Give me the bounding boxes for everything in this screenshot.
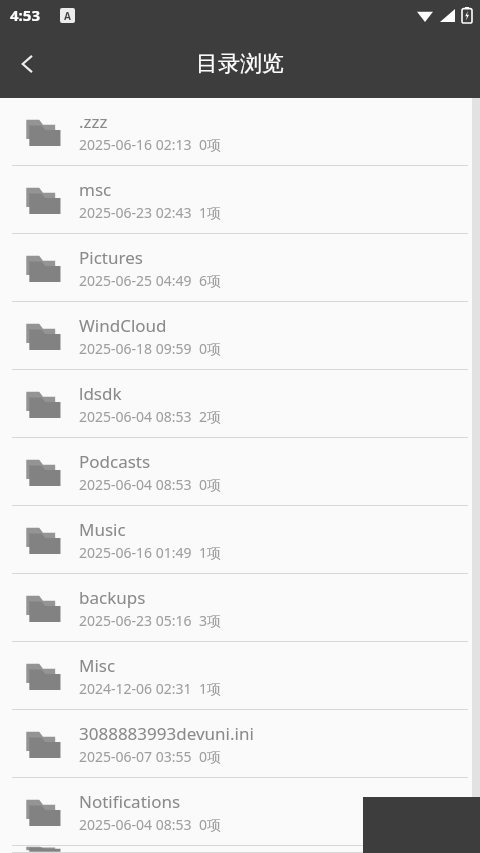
button[interactable]: ldsdk <box>0 370 480 438</box>
staticText: 2025-06-16 02:13 <box>79 135 192 154</box>
staticText: 3088883993devuni.ini <box>79 722 254 745</box>
staticText: 2025-06-16 01:49 <box>79 543 192 562</box>
staticText: backups <box>79 586 146 609</box>
button[interactable]: backups <box>0 574 480 642</box>
staticText: 3项 <box>199 611 222 630</box>
staticText: Notifications <box>79 790 181 813</box>
staticText: 2025-06-25 04:49 <box>79 271 192 290</box>
button[interactable]: Music <box>0 506 480 574</box>
button[interactable]: Misc <box>0 642 480 710</box>
staticText: 0项 <box>199 815 222 834</box>
staticText: Pictures <box>79 246 143 269</box>
staticText: Music <box>79 518 126 541</box>
staticText: msc <box>79 178 112 201</box>
staticText: 0项 <box>199 339 222 358</box>
staticText: 2025-06-04 08:53 <box>79 815 192 834</box>
staticText: WindCloud <box>79 314 167 337</box>
button[interactable]: Notifications <box>0 778 480 846</box>
staticText: 2025-06-23 02:43 <box>79 203 192 222</box>
staticText: 0项 <box>199 135 222 154</box>
staticText: 1项 <box>199 543 222 562</box>
staticText: Misc <box>79 654 116 677</box>
button[interactable]: Back <box>0 36 56 92</box>
staticText: Podcasts <box>79 450 151 473</box>
staticText: 2025-06-04 08:53 <box>79 407 192 426</box>
staticText: ldsdk <box>79 382 122 405</box>
staticText: 2025-06-23 05:16 <box>79 611 192 630</box>
staticText: 2025-06-07 03:55 <box>79 747 192 766</box>
staticText: 2项 <box>199 407 222 426</box>
button[interactable]: WindCloud <box>0 302 480 370</box>
button[interactable]: .zzz <box>0 98 480 166</box>
staticText: 2025-06-04 08:53 <box>79 475 192 494</box>
staticText: 1项 <box>199 679 222 698</box>
staticText: .zzz <box>79 110 108 133</box>
button[interactable]: 3088883993devuni.ini <box>0 710 480 778</box>
staticText: 目录浏览 <box>196 50 284 78</box>
staticText: 4:53 <box>10 5 40 25</box>
staticText: 6项 <box>199 271 222 290</box>
button[interactable]: Ringtones <box>0 846 480 853</box>
button[interactable]: Podcasts <box>0 438 480 506</box>
staticText: 0项 <box>199 747 222 766</box>
staticText: 0项 <box>199 475 222 494</box>
staticText: 2024-12-06 02:31 <box>79 679 192 698</box>
staticText: 2025-06-18 09:59 <box>79 339 192 358</box>
staticText: 1项 <box>199 203 222 222</box>
button[interactable]: Pictures <box>0 234 480 302</box>
staticText: A <box>64 9 71 23</box>
button[interactable]: msc <box>0 166 480 234</box>
